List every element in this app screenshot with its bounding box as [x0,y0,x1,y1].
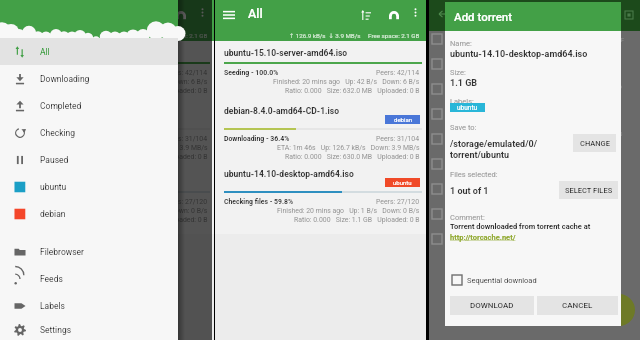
button[interactable]: CANCEL [537,296,618,315]
button[interactable]: debian-8.4.0-amd64-CD-1.iso [2,104,214,168]
staticText: Downloading - 36.4% [224,135,290,143]
staticText: Feeds [40,274,63,284]
staticText: 75F [614,36,625,43]
button[interactable]: SELECT FILES [559,181,618,199]
staticText: Peers: 27/120 [376,198,420,206]
staticText: Ratio: 0.000 Size: 630.0 MB Uploaded: 0 … [73,153,208,161]
staticText: I15 [614,130,623,137]
staticText: Seeding - 100.0% [11,69,66,77]
staticText: Settings [40,325,72,335]
staticText: Ratio: 0.000 Size: 1.1 GB Uploaded: 0 B [82,216,208,224]
staticText: debian [40,209,66,219]
staticText: ubuntu-14.10-desktop-amd64.iso [224,169,354,179]
staticText: All [248,6,263,21]
staticText: Torrent downloaded from torrent cache at [450,222,591,231]
staticText: Peers: 31/104 [376,135,420,143]
staticText: ubuntu [393,179,412,186]
button[interactable]: All [0,38,178,65]
staticText: Seeding - 100.0% [224,69,279,77]
staticText: Finished: 20 mins ago Up: 1 B/s Down: 0 … [277,207,420,215]
staticText: 1 out of 1 [450,186,489,197]
button[interactable]: Feeds [0,265,178,292]
staticText: Downloading [40,74,90,84]
staticText: Comment: [450,213,485,222]
staticText: ubuntu-14.10-desktop-amd64.iso [450,49,588,60]
button[interactable]: Open navigation drawer [219,5,238,24]
staticText: Checking files - 59.8% [224,198,294,206]
button[interactable]: debian-8.4.0-amd64-CD-1.iso [215,104,426,168]
staticText: ubuntu [40,182,67,192]
staticText: CHANGE [580,139,610,148]
staticText: debian-8.4.0-amd64-CD-1.iso [11,106,126,116]
staticText: Checking [40,128,76,138]
staticText: torrent/ubuntu [450,150,510,161]
staticText: All [40,47,50,57]
button[interactable]: Downloading [0,65,178,92]
staticText: debian [394,116,412,123]
button[interactable]: Checking [0,119,178,146]
button[interactable]: ubuntu-14.10-desktop-amd64.iso [215,167,426,234]
button[interactable]: Sort [356,5,375,24]
staticText: Name: [450,39,472,48]
staticText: Ratio: 0.000 Size: 630.0 MB Uploaded: 0 … [285,153,420,161]
staticText: ubuntu-15.10-server-amd64.iso [11,48,135,58]
staticText: /storage/emulated/0/ [450,139,537,150]
staticText: debian-8.4.0-amd64-CD-1.iso [224,106,339,116]
staticText: Files selected: [450,170,498,179]
staticText: Downloading - 36.4% [11,135,77,143]
staticText: SELECT FILES [565,186,613,195]
button[interactable]: Add magnet link [171,5,191,25]
staticText: http://torcache.net/ [450,233,516,242]
button[interactable]: Sequential download [452,275,537,285]
button[interactable]: Settings [0,319,178,340]
button[interactable]: CHANGE [573,134,616,152]
staticText: Finished: 20 mins ago Up: 42 B/s Down: 6… [273,78,420,86]
button[interactable]: ubuntu-14.10-desktop-amd64.iso [2,167,214,234]
button[interactable]: Add magnet link [384,5,404,25]
staticText: Ratio: 0.000 Size: 632.0 MB Uploaded: 0 … [285,87,420,95]
staticText: Filebrowser [40,247,84,257]
staticText: Size: [450,68,466,77]
staticText: ↑ 126.9 kB/s ↓ 3.9 MB/s Free space: 2.1 … [289,32,420,39]
staticText: 1.1 GB [450,78,478,89]
button[interactable]: DOWNLOAD [450,296,534,315]
staticText: Finished: 20 mins ago Up: 1 B/s Down: 0 … [65,207,208,215]
staticText: Peers: 42/114 [376,69,420,77]
staticText: Completed [40,101,82,111]
staticText: AD [614,83,622,90]
staticText: Labels [40,301,65,311]
staticText: CANCEL [562,301,593,310]
staticText: ↑ 126.9 kB/s ↓ 3.9 MB/s Free space: 2.1 … [77,32,208,39]
button[interactable]: Paused [0,146,178,173]
staticText: Peers: 27/120 [164,198,208,206]
staticText: Ratio: 0.000 Size: 1.1 GB Uploaded: 0 B [294,216,420,224]
staticText: ubuntu [457,104,478,112]
staticText: Peers: 31/104 [164,135,208,143]
staticText: Add torrent [454,10,513,23]
button[interactable]: ubuntu-15.10-server-amd64.iso [2,41,214,104]
button[interactable]: Sort [143,5,162,24]
button[interactable]: More options [409,6,422,19]
staticText: ETA: 1m 46s Up: 126.7 kB/s Down: 3.9 MB/… [65,144,208,152]
staticText: Peers: 42/114 [164,69,208,77]
staticText: Save to: [450,123,477,132]
staticText: Paused [40,155,69,165]
button[interactable]: ubuntu-15.10-server-amd64.iso [215,41,426,104]
button[interactable]: Labels [0,292,178,319]
staticText: Sequential download [467,276,537,285]
staticText: ubuntu-15.10-server-amd64.iso [224,48,348,58]
staticText: Ratio: 0.000 Size: 632.0 MB Uploaded: 0 … [73,87,208,95]
button[interactable]: More options [196,6,209,19]
staticText: Finished: 20 mins ago Up: 42 B/s Down: 6… [61,78,208,86]
button[interactable]: Completed [0,92,178,119]
staticText: DOWNLOAD [470,301,514,310]
staticText: ETA: 1m 46s Up: 126.7 kB/s Down: 3.9 MB/… [277,144,420,152]
button[interactable]: debian [0,200,178,227]
staticText: Labels: [450,97,474,106]
button[interactable]: Open navigation drawer [6,5,25,24]
button[interactable]: ubuntu [0,173,178,200]
button[interactable]: Filebrowser [0,238,178,265]
